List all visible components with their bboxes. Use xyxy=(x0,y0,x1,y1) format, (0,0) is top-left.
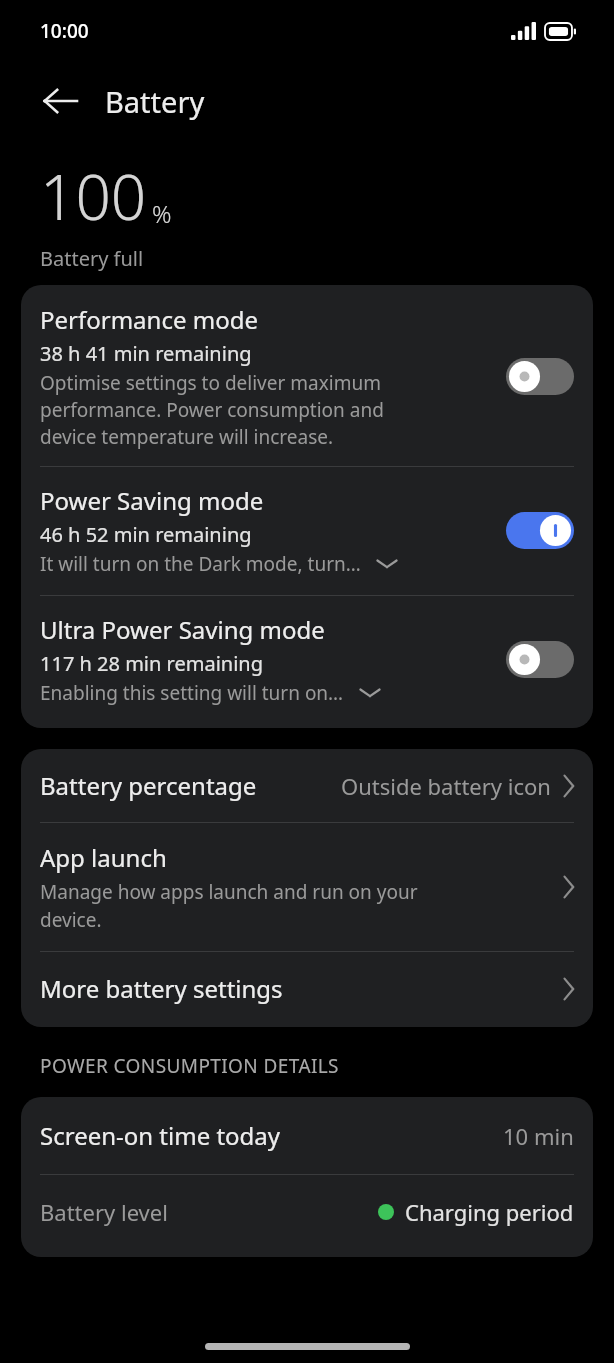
button[interactable]: Toggle on xyxy=(506,512,574,549)
staticText: Optimise settings to deliver maximum per… xyxy=(40,370,384,450)
staticText: Battery level xyxy=(40,1197,378,1227)
staticText: Performance mode xyxy=(40,303,258,336)
button[interactable]: Battery percentage xyxy=(21,749,593,822)
button[interactable]: App launch xyxy=(21,823,593,951)
staticText: Battery xyxy=(105,82,205,121)
staticText: Charging period xyxy=(405,1197,574,1227)
staticText: POWER CONSUMPTION DETAILS xyxy=(40,1053,339,1079)
staticText: 100 xyxy=(40,154,147,238)
staticText: Battery percentage xyxy=(40,769,341,802)
staticText: Enabling this setting will turn on… xyxy=(40,680,344,706)
staticText: Battery full xyxy=(40,245,144,272)
staticText: Screen-on time today xyxy=(40,1119,503,1152)
button[interactable]: Screen-on time today xyxy=(21,1097,593,1174)
button[interactable]: Ultra Power Saving mode xyxy=(21,596,593,728)
staticText: 10 min xyxy=(503,1121,574,1151)
button[interactable]: Power Saving mode xyxy=(21,467,593,595)
staticText: Ultra Power Saving mode xyxy=(40,613,325,646)
staticText: 46 h 52 min remaining xyxy=(40,521,252,548)
staticText: Outside battery icon xyxy=(341,771,551,801)
staticText: Manage how apps launch and run on your d… xyxy=(40,879,418,933)
button[interactable]: Performance mode xyxy=(21,285,593,466)
staticText: % xyxy=(152,197,172,230)
staticText: 38 h 41 min remaining xyxy=(40,340,252,367)
button[interactable]: Back xyxy=(28,69,92,133)
staticText: App launch xyxy=(40,841,167,874)
button[interactable]: Toggle off xyxy=(506,358,574,395)
button[interactable]: More battery settings xyxy=(21,952,593,1027)
staticText: More battery settings xyxy=(40,972,562,1005)
staticText: 117 h 28 min remaining xyxy=(40,650,263,677)
staticText: Power Saving mode xyxy=(40,484,264,517)
staticText: It will turn on the Dark mode, turn… xyxy=(40,551,361,577)
button[interactable]: Toggle off xyxy=(506,641,574,678)
staticText: 10:00 xyxy=(40,18,89,44)
